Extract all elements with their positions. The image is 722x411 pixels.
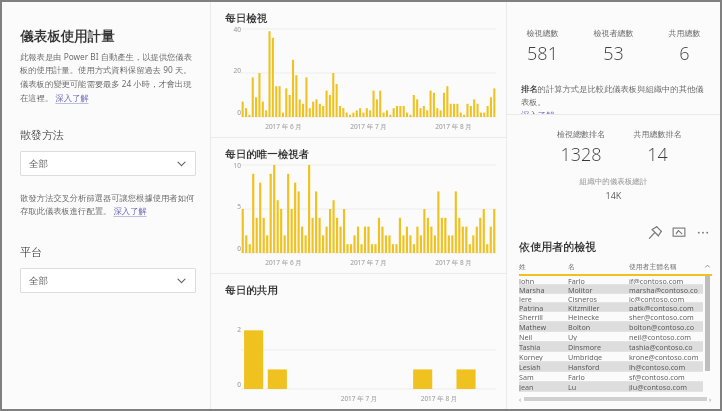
staticText: Hansford: [568, 362, 629, 371]
staticText: 14: [619, 142, 696, 167]
staticText: Bolton: [568, 322, 629, 331]
staticText: 2: [225, 325, 241, 334]
staticText: 使用者主體名稱: [629, 262, 703, 271]
staticText: 2017 年 7 月: [326, 258, 411, 267]
staticText: lh@contoso.com: [629, 362, 703, 371]
staticText: bolton@contoso.co: [629, 322, 703, 331]
staticText: 2017 年 8 月: [411, 258, 496, 267]
button[interactable]: Marsha: [519, 285, 703, 293]
button[interactable]: Focus mode: [672, 225, 686, 239]
staticText: jf@contoso.com: [629, 276, 703, 284]
staticText: 名: [568, 262, 629, 271]
button[interactable]: Neil: [519, 332, 703, 341]
staticText: 組織中的儀表板總計: [507, 177, 720, 186]
staticText: 此報表是由 Power BI 自動產生，以提供您儀表板的使用計量。使用方式資料保…: [20, 51, 196, 104]
button[interactable]: 全部: [20, 268, 196, 293]
button[interactable]: Tashia: [519, 342, 703, 351]
staticText: 0: [225, 108, 241, 117]
staticText: krone@contoso.com: [629, 352, 703, 361]
staticText: 0: [225, 380, 241, 389]
staticText: patk@contoso.com: [629, 303, 703, 311]
staticText: 0: [225, 244, 241, 253]
staticText: 每日的共用: [225, 284, 278, 297]
staticText: 10: [225, 161, 241, 170]
staticText: neil@contoso.com: [629, 332, 703, 341]
staticText: 檢視總數: [507, 28, 578, 38]
button[interactable]: Pin to dashboard: [648, 225, 662, 239]
staticText: jc@contoso.com: [629, 294, 703, 302]
staticText: 14K: [507, 189, 720, 201]
staticText: Tashia: [519, 342, 568, 351]
staticText: Cisneros: [568, 294, 629, 302]
button[interactable]: Sam: [519, 372, 703, 381]
staticText: Farlo: [568, 372, 629, 381]
button[interactable]: Lesiah: [519, 362, 703, 371]
staticText: 依使用者的檢視: [519, 240, 596, 254]
staticText: Dinsmore: [568, 342, 629, 351]
staticText: Mathew: [519, 322, 568, 331]
staticText: 全部: [29, 275, 176, 287]
staticText: 全部: [29, 158, 176, 170]
staticText: 儀表板使用計量: [20, 28, 115, 45]
button[interactable]: Jere: [519, 294, 703, 302]
button[interactable]: More options: [696, 225, 710, 239]
staticText: Sherrill: [519, 312, 568, 321]
staticText: marsha@contoso.co: [629, 285, 703, 293]
staticText: 共用總數排名: [619, 129, 696, 139]
staticText: 每日檢視: [225, 12, 267, 25]
staticText: 2017 年 8 月: [401, 394, 477, 403]
staticText: Patrina: [519, 303, 568, 311]
staticText: 5: [225, 202, 241, 211]
staticText: 2017 年 7 月: [326, 122, 411, 131]
staticText: Farlo: [568, 276, 629, 284]
button[interactable]: Jean: [519, 382, 703, 391]
button[interactable]: Sherrill: [519, 312, 703, 321]
staticText: 581: [507, 41, 578, 66]
staticText: Kitzmiller: [568, 303, 629, 311]
staticText: sf@contoso.com: [629, 372, 703, 381]
staticText: 平台: [20, 245, 42, 259]
staticText: 1328: [543, 142, 619, 167]
staticText: 檢視者總數: [578, 28, 649, 38]
staticText: 散發方法交叉分析篩選器可讓您根據使用者如何存取此儀表板進行配置。 深入了解: [20, 193, 196, 217]
staticText: Lesiah: [519, 362, 568, 371]
staticText: 53: [578, 41, 649, 66]
button[interactable]: Mathew: [519, 322, 703, 331]
button[interactable]: John: [519, 276, 703, 284]
staticText: 排名的計算方式是比較此儀表板與組織中的其他儀表板。 深入了解: [521, 84, 708, 114]
staticText: 共用總數: [649, 28, 720, 38]
staticText: 6: [649, 41, 720, 66]
staticText: Umbridge: [568, 352, 629, 361]
staticText: John: [519, 276, 568, 284]
staticText: Jere: [519, 294, 568, 302]
staticText: 每日的唯一檢視者: [225, 148, 309, 161]
staticText: jlu@contoso.com: [629, 382, 703, 391]
staticText: 檢視總數排名: [543, 129, 619, 139]
button[interactable]: Patrina: [519, 303, 703, 311]
staticText: 姓: [519, 262, 568, 271]
staticText: 2017 年 7 月: [317, 394, 401, 403]
staticText: Heinecke: [568, 312, 629, 321]
staticText: Uy: [568, 332, 629, 341]
staticText: Molitor: [568, 285, 629, 293]
staticText: tashia@contoso.co: [629, 342, 703, 351]
staticText: ›: [709, 395, 712, 403]
button[interactable]: 全部: [20, 151, 196, 176]
staticText: sher@contoso.com: [629, 312, 703, 321]
staticText: 2017 年 6 月: [241, 258, 326, 267]
staticText: Neil: [519, 332, 568, 341]
staticText: Jean: [519, 382, 568, 391]
staticText: Sam: [519, 372, 568, 381]
staticText: Korney: [519, 352, 568, 361]
staticText: ‹: [519, 395, 522, 403]
staticText: Marsha: [519, 285, 568, 293]
staticText: 40: [225, 25, 241, 34]
staticText: 2017 年 8 月: [411, 122, 496, 131]
staticText: 散發方法: [20, 128, 64, 142]
staticText: 20: [225, 66, 241, 75]
staticText: 2017 年 6 月: [241, 122, 326, 131]
staticText: Lu: [568, 382, 629, 391]
button[interactable]: Korney: [519, 352, 703, 361]
